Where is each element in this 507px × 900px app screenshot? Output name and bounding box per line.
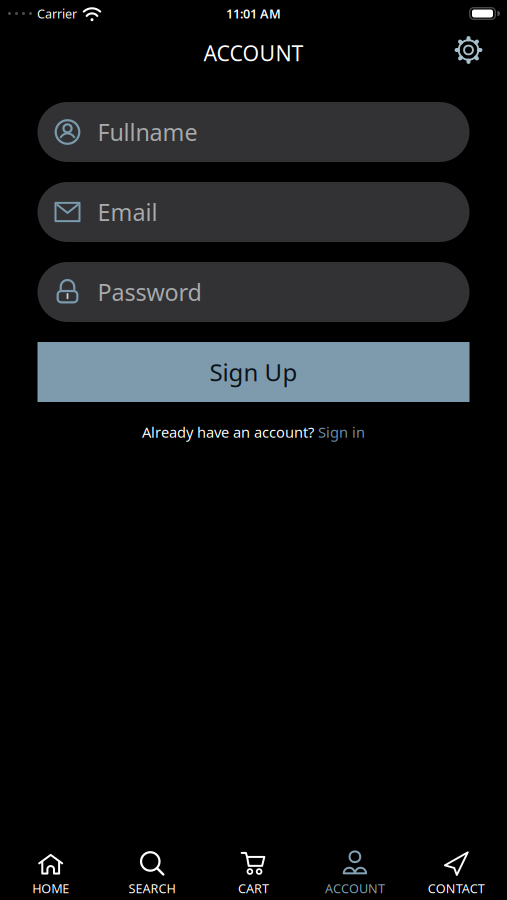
button[interactable]: Email text field [37, 182, 469, 242]
button[interactable]: HOME [0, 850, 101, 897]
button[interactable]: Password text field [37, 262, 469, 322]
button[interactable]: ACCOUNT [304, 850, 406, 897]
button[interactable]: SEARCH [101, 850, 203, 897]
button[interactable]: Settings [454, 35, 483, 64]
staticText: Sign in [318, 422, 365, 442]
staticText: ACCOUNT [203, 38, 303, 68]
staticText: ACCOUNT [325, 880, 385, 897]
staticText: Carrier [37, 5, 77, 22]
button[interactable]: Sign Up [37, 342, 469, 402]
button[interactable]: CART [203, 850, 304, 897]
staticText: Fullname [97, 116, 197, 148]
staticText: Email [97, 196, 157, 228]
staticText: HOME [32, 880, 69, 897]
staticText: CONTACT [428, 880, 485, 897]
button[interactable]: Fullname text field [37, 102, 469, 162]
staticText: SEARCH [129, 880, 176, 897]
staticText: Password [97, 276, 201, 308]
staticText: CART [238, 880, 269, 897]
staticText: Sign Up [209, 356, 297, 388]
staticText: Already have an account? [142, 422, 314, 442]
button[interactable]: Sign in [318, 422, 365, 442]
button[interactable]: CONTACT [406, 850, 507, 897]
staticText: 11:01 AM [226, 5, 281, 22]
